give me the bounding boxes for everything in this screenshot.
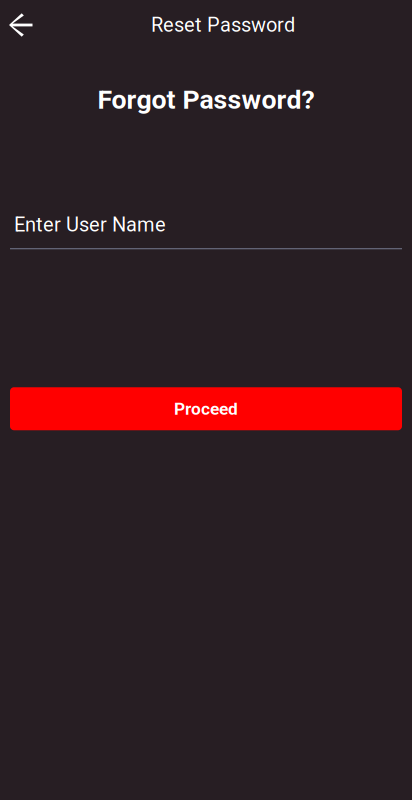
button[interactable]: Proceed <box>10 387 402 430</box>
button[interactable]: Back <box>0 0 42 50</box>
staticText: Forgot Password? <box>97 84 314 115</box>
button[interactable]: Enter User Name <box>10 208 402 249</box>
staticText: Enter User Name <box>14 213 166 236</box>
staticText: Reset Password <box>151 13 295 37</box>
staticText: Proceed <box>174 399 238 419</box>
